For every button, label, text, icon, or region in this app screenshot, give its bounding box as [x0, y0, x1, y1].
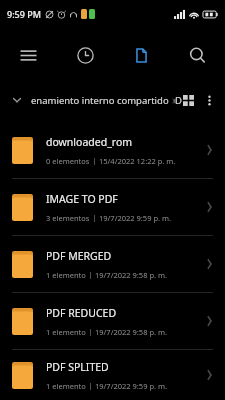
- staticText: 1 elemento: [46, 381, 86, 391]
- button[interactable]: IMAGE TO PDF: [0, 179, 225, 236]
- staticText: downloaded_rom: [46, 135, 133, 149]
- button[interactable]: More options: [199, 90, 219, 110]
- staticText: 3 elementos: [46, 213, 90, 223]
- staticText: 1 elemento: [46, 270, 86, 280]
- staticText: 15/4/2022 12:22 p. m.: [99, 156, 176, 166]
- staticText: 19/7/2022 9:59 p. m.: [99, 213, 171, 223]
- button[interactable]: PDF SPLITED: [0, 350, 225, 400]
- staticText: PDF SPLITED: [46, 360, 109, 374]
- button[interactable]: Menu: [0, 28, 57, 82]
- button[interactable]: enamiento interno compartido: [31, 94, 175, 107]
- staticText: 19/7/2022 9:58 p. m.: [95, 327, 167, 337]
- staticText: 1 elemento: [46, 327, 86, 337]
- staticText: 19/7/2022 9:59 p. m.: [95, 381, 167, 391]
- button[interactable]: Search: [169, 28, 225, 82]
- button[interactable]: Recent: [57, 28, 113, 82]
- button[interactable]: PDF MERGED: [0, 236, 225, 293]
- staticText: PDF REDUCED: [46, 306, 117, 320]
- button[interactable]: Grid view: [177, 89, 199, 111]
- staticText: 9:59 PM: [7, 8, 41, 20]
- staticText: enamiento interno compartido: [31, 94, 169, 107]
- staticText: IMAGE TO PDF: [46, 192, 118, 206]
- staticText: PDF MERGED: [46, 249, 112, 263]
- button[interactable]: Files: [113, 28, 169, 82]
- button[interactable]: Collapse path: [6, 89, 28, 111]
- button[interactable]: downloaded_rom: [0, 122, 225, 179]
- button[interactable]: PDF REDUCED: [0, 293, 225, 350]
- staticText: 19/7/2022 9:58 p. m.: [95, 270, 167, 280]
- staticText: 0 elementos: [46, 156, 90, 166]
